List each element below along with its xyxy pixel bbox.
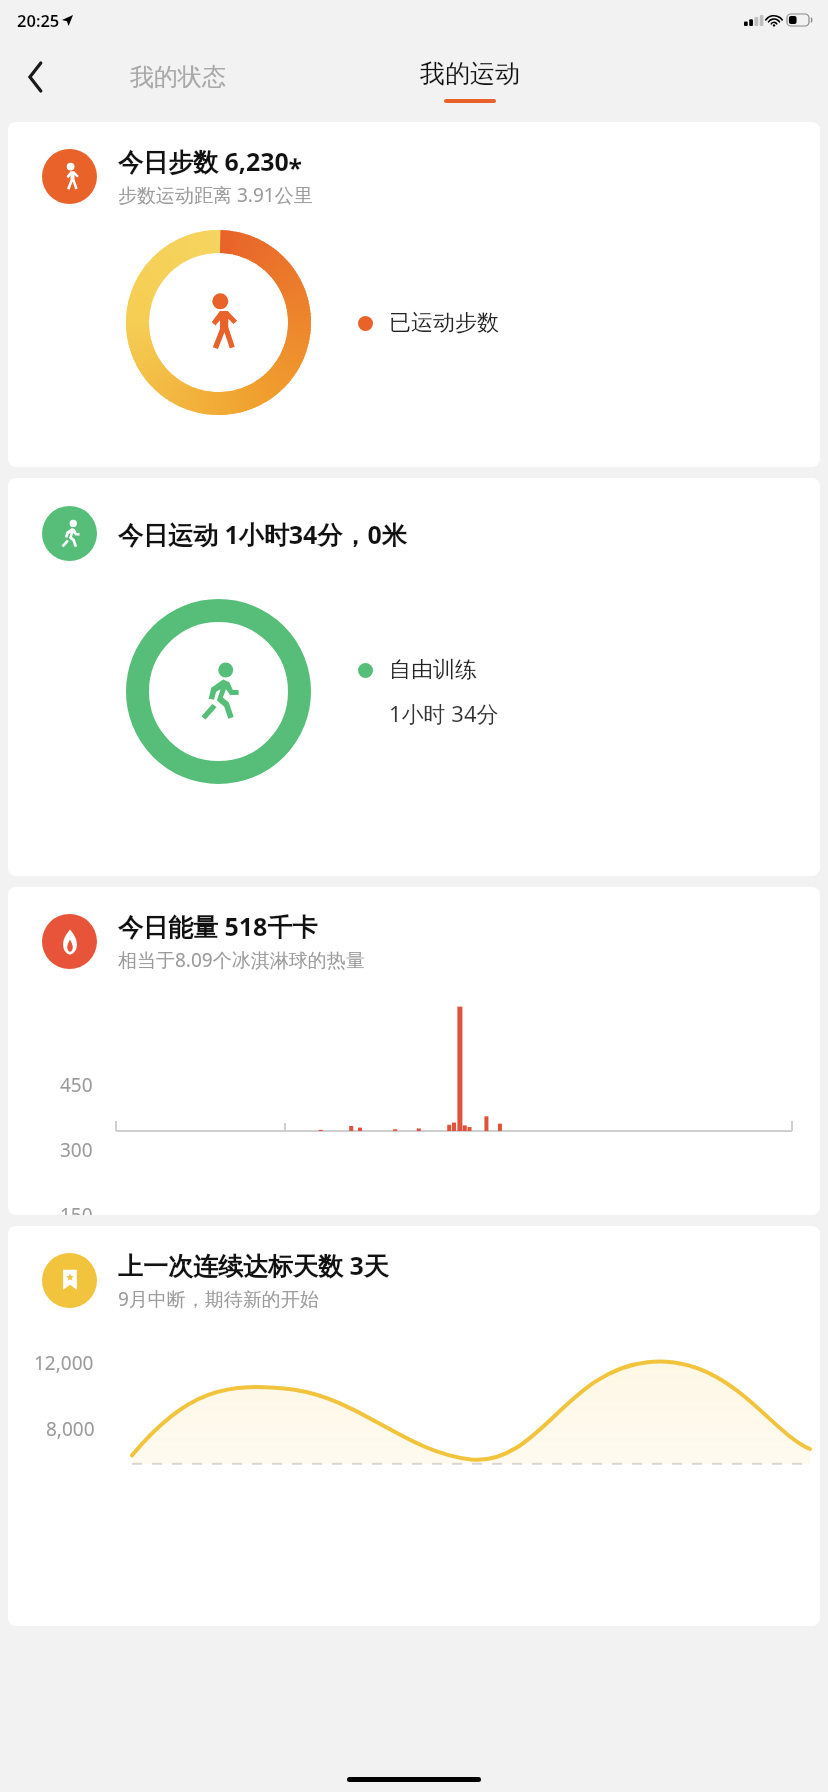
button[interactable]: 今日步数 6,230 ⃰	[8, 122, 820, 467]
button[interactable]: 我的运动	[420, 40, 520, 114]
staticText: 150	[60, 1202, 93, 1215]
button[interactable]: Back	[0, 40, 72, 114]
staticText: 已运动步数	[389, 309, 499, 337]
staticText: 今日步数 6,230 ⃰	[118, 144, 296, 178]
button[interactable]: 今日运动 1小时34分，0米	[8, 478, 820, 876]
staticText: 今日能量 518千卡	[118, 909, 318, 943]
staticText: 8,000	[46, 1416, 95, 1442]
staticText: 450	[60, 1072, 93, 1098]
staticText: 我的状态	[130, 62, 226, 92]
staticText: 1小时 34分	[389, 698, 499, 728]
button[interactable]: 上一次连续达标天数 3天	[8, 1226, 820, 1626]
staticText: 12,000	[34, 1350, 94, 1376]
staticText: 300	[60, 1137, 93, 1163]
button[interactable]: 我的状态	[130, 40, 226, 114]
staticText: 自由训练	[389, 656, 477, 684]
staticText: 相当于8.09个冰淇淋球的热量	[118, 947, 365, 973]
staticText: 今日运动 1小时34分，0米	[118, 517, 407, 551]
staticText: 我的运动	[420, 58, 520, 89]
button[interactable]: 今日能量 518千卡	[8, 887, 820, 1215]
staticText: 9月中断，期待新的开始	[118, 1286, 319, 1312]
staticText: 上一次连续达标天数 3天	[118, 1248, 389, 1282]
staticText: 步数运动距离 3.91公里	[118, 182, 313, 208]
staticText: 20:25	[17, 9, 60, 31]
